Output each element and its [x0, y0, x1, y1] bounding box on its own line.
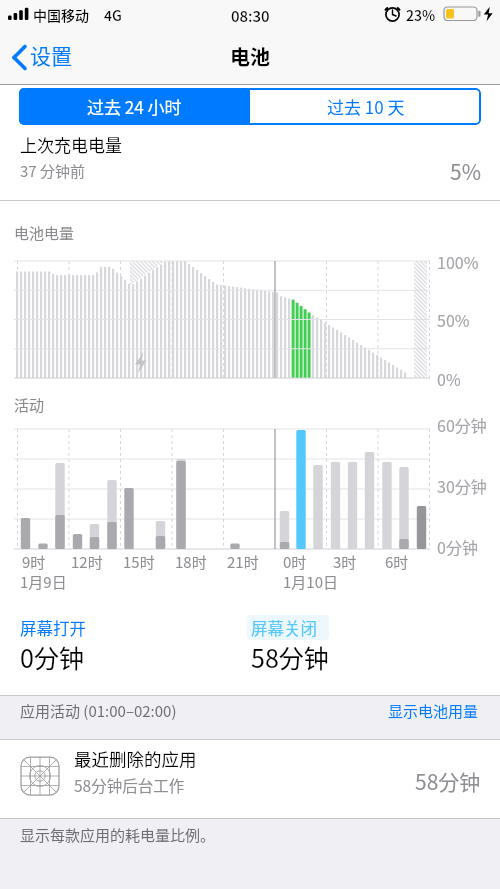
staticText: 设置 [30, 40, 72, 70]
staticText: 显示每款应用的耗电量比例。 [20, 824, 216, 846]
staticText: 58分钟 [415, 766, 481, 796]
staticText: 最近删除的应用 [74, 746, 197, 771]
staticText: 过去 10 天 [327, 94, 405, 119]
staticText: 屏幕关闭 [251, 616, 317, 640]
staticText: 中国移动 [33, 5, 89, 25]
staticText: 15时 [123, 551, 155, 573]
button[interactable]: 屏幕关闭 [245, 612, 460, 684]
button[interactable]: 屏幕打开 [14, 612, 229, 684]
staticText: 显示电池用量 [388, 700, 479, 722]
staticText: 0时 [283, 551, 307, 573]
staticText: 50% [437, 308, 470, 331]
staticText: 电池 [230, 42, 270, 71]
staticText: 屏幕打开 [20, 616, 86, 640]
staticText: 电池电量 [14, 222, 75, 244]
staticText: 58分钟后台工作 [74, 774, 185, 796]
staticText: 0分钟 [437, 535, 478, 558]
staticText: 23% [406, 5, 436, 25]
staticText: 应用活动 (01:00–02:00) [20, 700, 177, 722]
staticText: 活动 [14, 394, 45, 416]
staticText: 18时 [175, 551, 207, 573]
button[interactable]: 过去 24 小时 [19, 88, 250, 125]
button[interactable]: 显示电池用量 [360, 697, 485, 723]
staticText: 21时 [227, 551, 259, 573]
staticText: 3时 [333, 551, 357, 573]
staticText: 58分钟 [251, 639, 329, 675]
staticText: 1月9日 [20, 571, 67, 593]
staticText: 0% [437, 367, 461, 390]
button[interactable]: 设置 [0, 36, 90, 78]
staticText: 100% [437, 250, 479, 273]
staticText: 1月10日 [283, 571, 338, 593]
staticText: 60分钟 [437, 413, 487, 436]
button[interactable]: 过去 10 天 [250, 88, 481, 125]
staticText: 0分钟 [20, 639, 84, 675]
staticText: 5% [450, 156, 481, 186]
staticText: 6时 [385, 551, 409, 573]
staticText: 08:30 [231, 5, 270, 27]
staticText: 30分钟 [437, 474, 487, 497]
staticText: 37 分钟前 [20, 160, 86, 182]
staticText: 上次充电电量 [20, 132, 122, 157]
staticText: 4G [104, 5, 122, 25]
staticText: 过去 24 小时 [87, 94, 182, 119]
staticText: 12时 [71, 551, 103, 573]
staticText: 9时 [22, 551, 46, 573]
button[interactable]: 最近删除的应用 [0, 740, 500, 818]
